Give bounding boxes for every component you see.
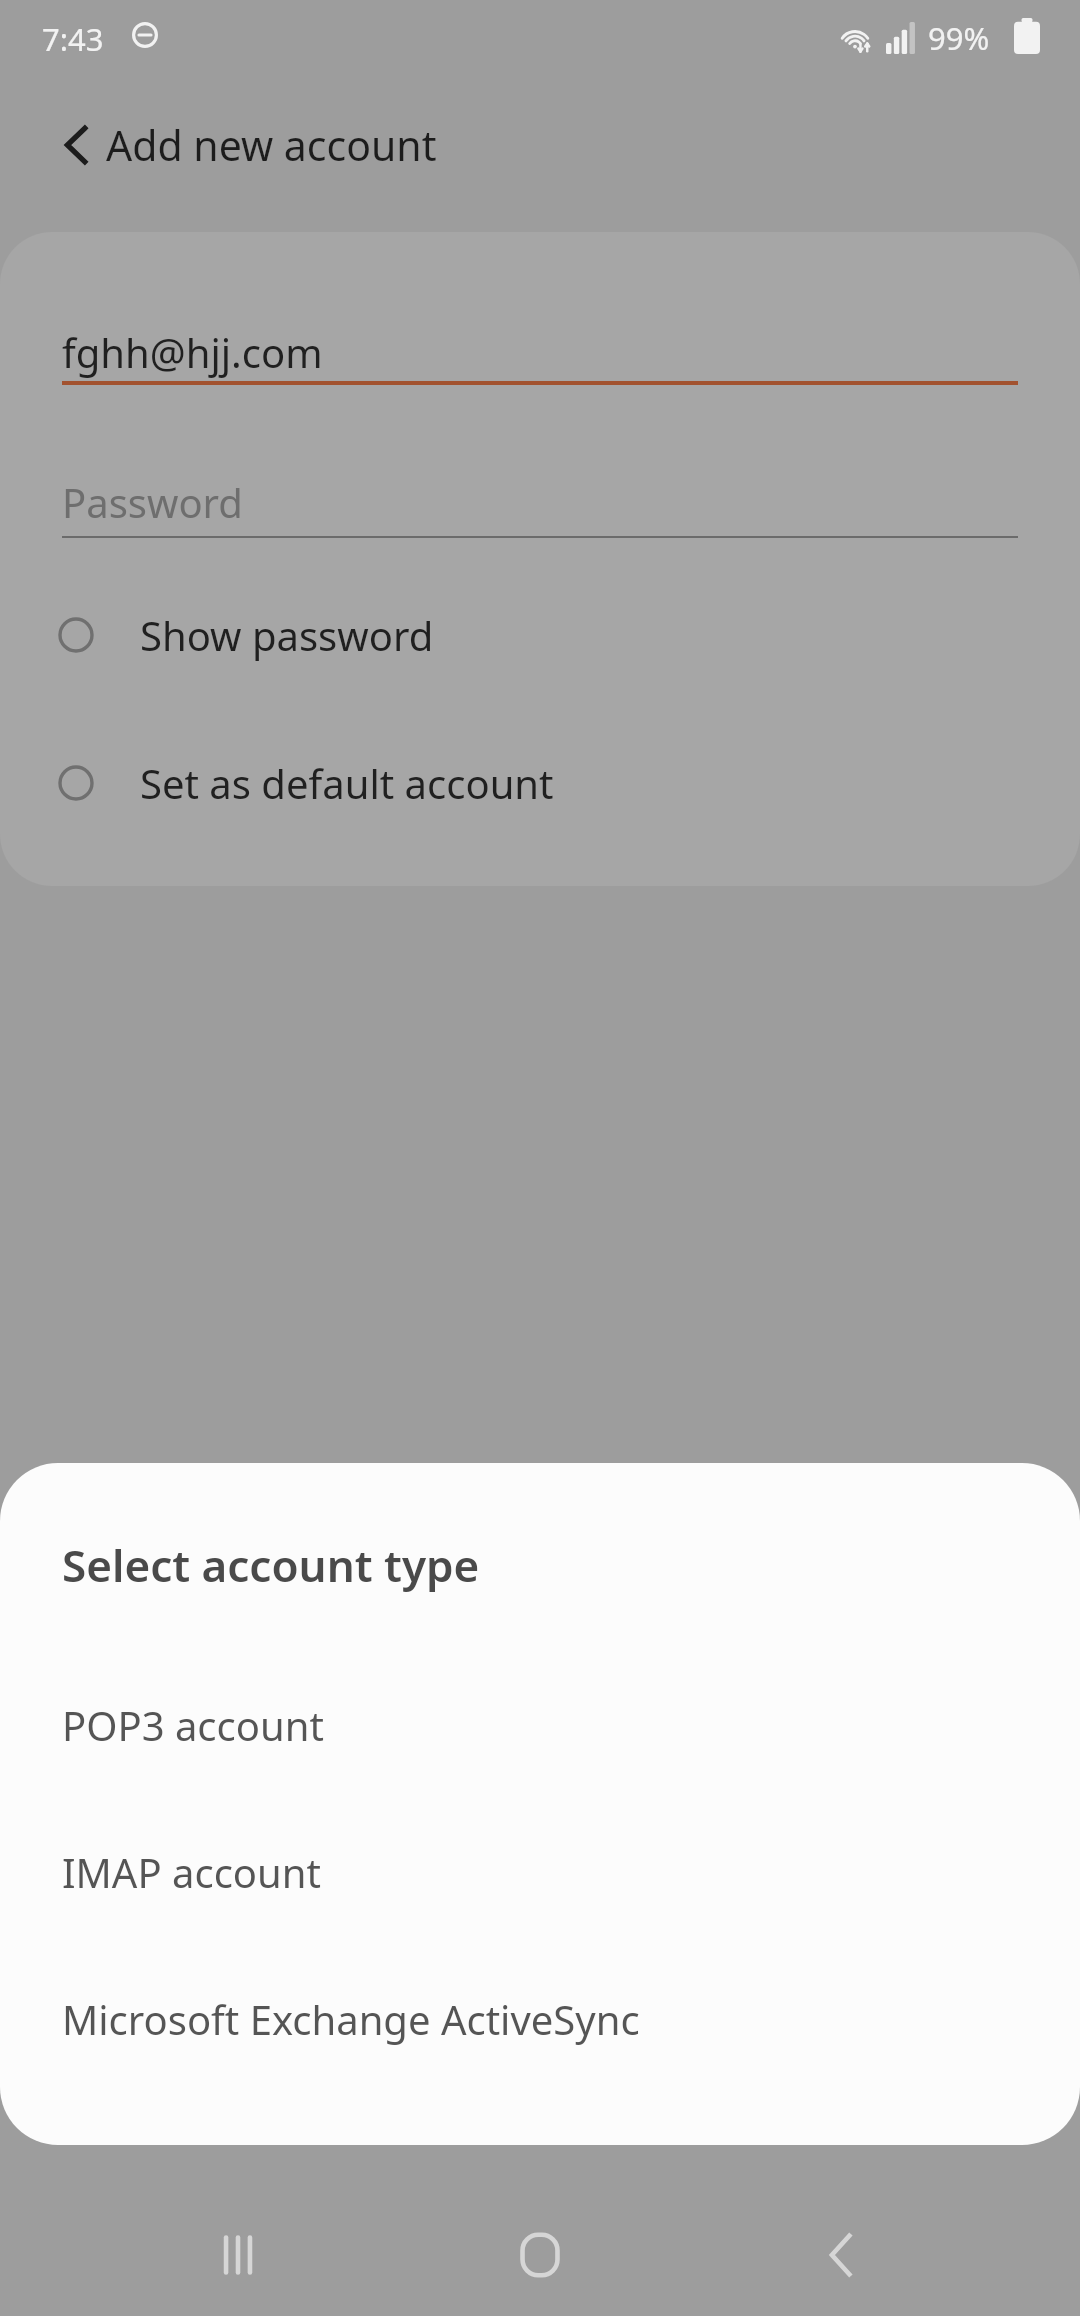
button[interactable]: Navigate up xyxy=(36,103,120,187)
staticText: Select account type xyxy=(62,1535,480,1595)
staticText: IMAP account xyxy=(62,1845,321,1899)
button[interactable]: Home xyxy=(480,2195,600,2315)
button[interactable]: Microsoft Exchange ActiveSync xyxy=(0,1953,1080,2085)
staticText: Add new account xyxy=(106,117,437,173)
staticText: 7:43 xyxy=(42,18,104,60)
staticText: POP3 account xyxy=(62,1698,324,1752)
button[interactable]: POP3 account xyxy=(0,1659,1080,1791)
button[interactable]: IMAP account xyxy=(0,1806,1080,1938)
staticText: Microsoft Exchange ActiveSync xyxy=(62,1992,640,2046)
button[interactable]: Show password xyxy=(48,587,948,683)
staticText: 99% xyxy=(928,17,990,59)
staticText: Show password xyxy=(140,608,434,662)
staticText: Password xyxy=(62,475,243,529)
staticText: Set as default account xyxy=(140,756,554,810)
button[interactable]: Recent apps xyxy=(178,2195,298,2315)
button[interactable]: Set as default account xyxy=(48,735,948,831)
button[interactable]: Back xyxy=(782,2195,902,2315)
staticText: fghh@hjj.com xyxy=(62,325,323,379)
